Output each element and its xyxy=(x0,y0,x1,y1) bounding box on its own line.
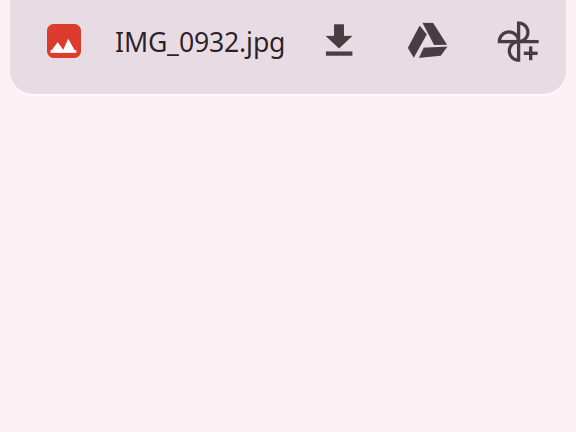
button[interactable]: Add to Google Photos xyxy=(494,17,548,71)
staticText: IMG_0932.jpg xyxy=(115,24,285,59)
button[interactable]: Save to Drive xyxy=(400,13,454,67)
button[interactable]: IMG_0932.jpg xyxy=(40,4,290,64)
button[interactable]: Download xyxy=(312,13,366,67)
